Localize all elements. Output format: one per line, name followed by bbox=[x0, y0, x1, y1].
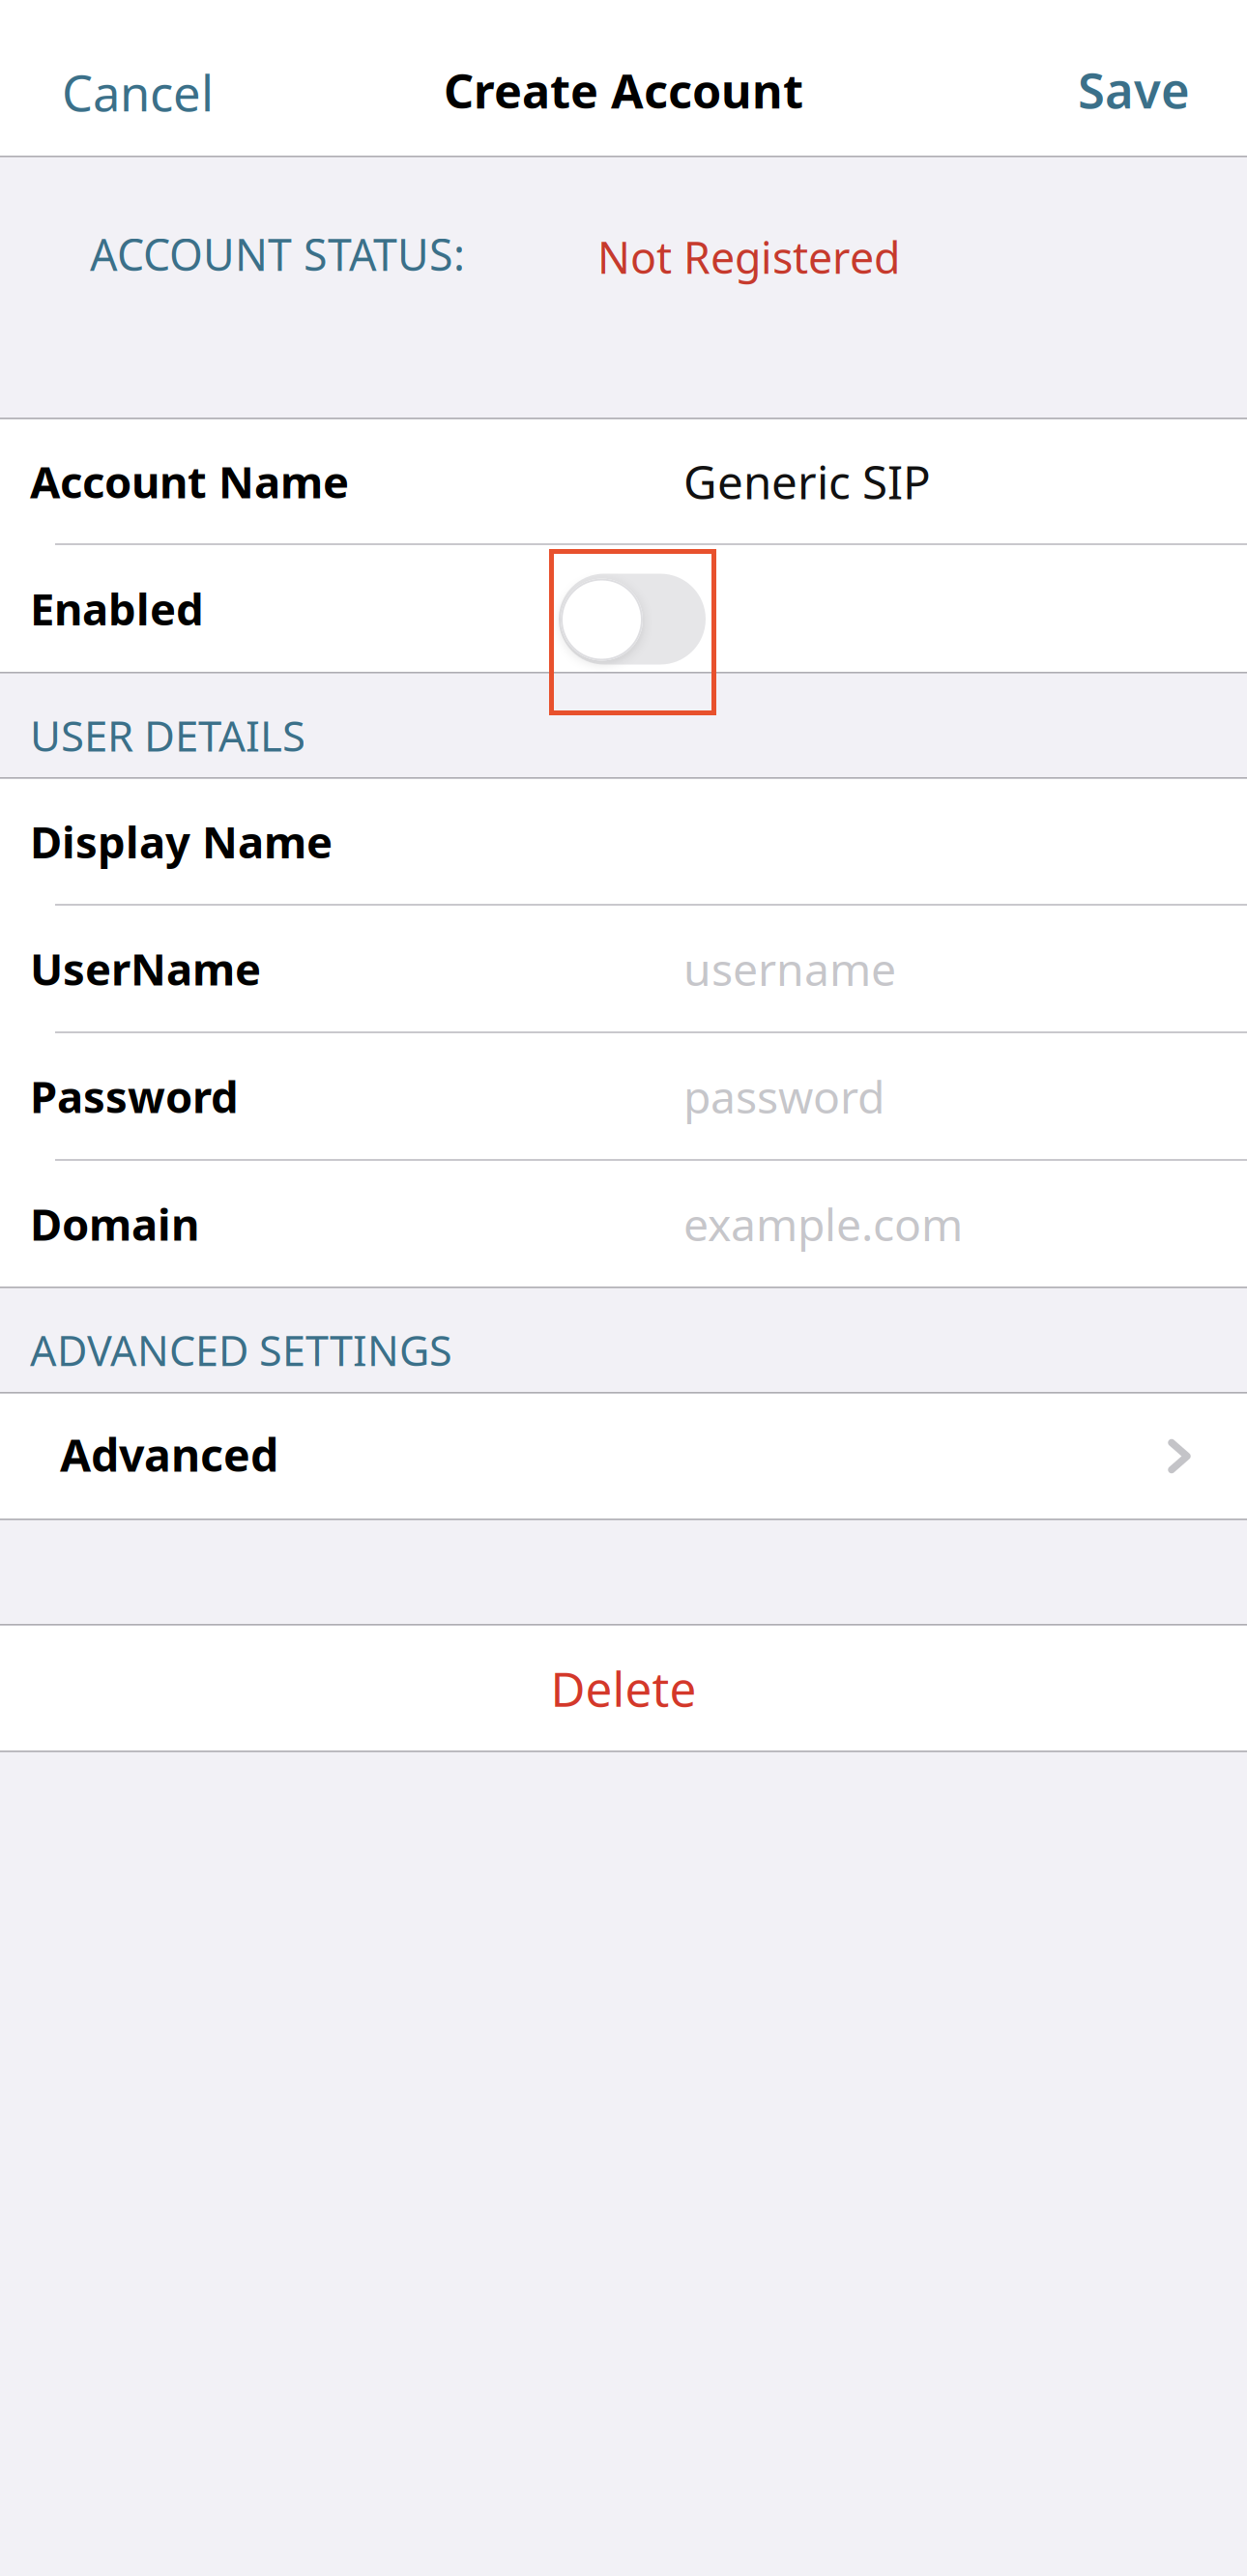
staticText: Password bbox=[30, 1067, 239, 1125]
button[interactable]: Save bbox=[1049, 0, 1247, 156]
button[interactable]: Enabled bbox=[559, 574, 706, 665]
staticText: Create Account bbox=[444, 59, 803, 122]
button[interactable]: Account Name bbox=[0, 420, 1247, 543]
staticText: Cancel bbox=[62, 60, 214, 125]
button[interactable]: Domain bbox=[0, 1161, 1247, 1287]
button[interactable]: Display Name bbox=[0, 779, 1247, 904]
staticText: USER DETAILS bbox=[30, 707, 305, 763]
staticText: Enabled bbox=[30, 579, 204, 638]
button[interactable]: Advanced bbox=[0, 1394, 1247, 1519]
staticText: Account Name bbox=[30, 452, 349, 510]
button[interactable]: Delete bbox=[0, 1626, 1247, 1751]
button[interactable]: Password bbox=[0, 1033, 1247, 1159]
staticText: password bbox=[683, 1066, 884, 1126]
staticText: Display Name bbox=[30, 812, 333, 871]
button[interactable]: Cancel bbox=[0, 0, 243, 156]
staticText: example.com bbox=[683, 1194, 963, 1253]
staticText: Delete bbox=[551, 1656, 696, 1720]
staticText: Save bbox=[1078, 57, 1190, 122]
staticText: username bbox=[683, 939, 896, 998]
staticText: Generic SIP bbox=[683, 451, 931, 512]
staticText: ADVANCED SETTINGS bbox=[30, 1322, 452, 1378]
staticText: ACCOUNT STATUS: bbox=[90, 226, 465, 283]
staticText: Not Registered bbox=[597, 228, 900, 286]
staticText: Advanced bbox=[60, 1424, 278, 1484]
button[interactable]: UserName bbox=[0, 906, 1247, 1031]
staticText: Domain bbox=[30, 1195, 199, 1253]
staticText: UserName bbox=[30, 939, 261, 998]
